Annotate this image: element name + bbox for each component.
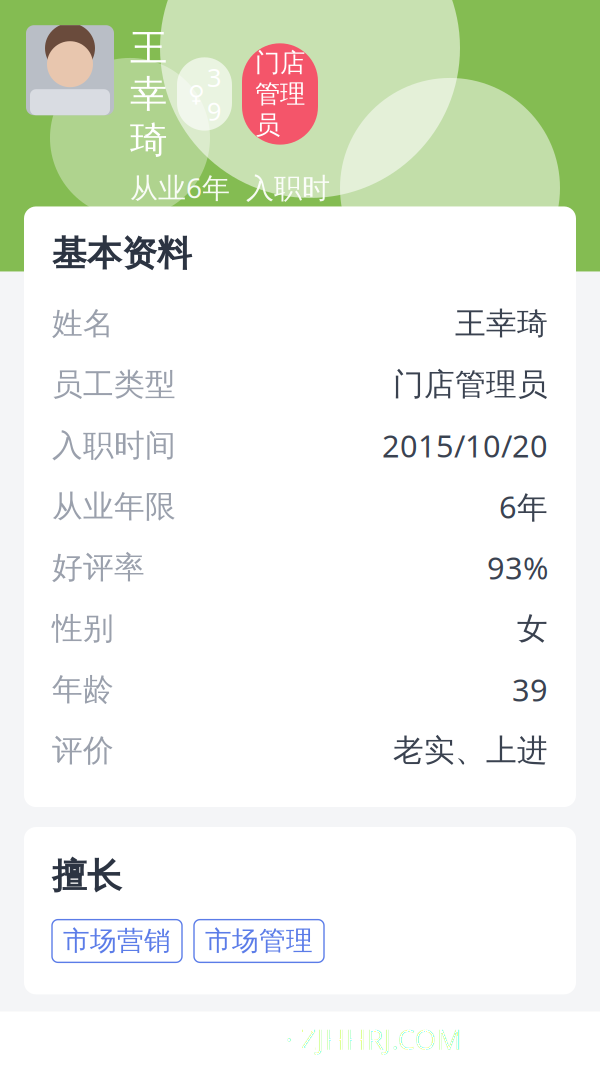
staticText: 女 <box>517 610 548 647</box>
staticText: 老实、上进 <box>393 732 548 769</box>
staticText: 从业年限 <box>52 488 176 525</box>
staticText: 姓名 <box>52 305 114 342</box>
staticText: 擅长 <box>52 855 122 898</box>
staticText: 市场管理 <box>205 925 313 957</box>
staticText: 从业6年 入职时间：2015/10/20 <box>130 169 334 243</box>
staticText: 6年 <box>499 486 548 527</box>
button[interactable]: 市场管理 <box>194 920 324 962</box>
staticText: 年龄 <box>52 671 114 708</box>
staticText: 王幸琦 <box>455 305 548 342</box>
staticText: 好评率 <box>52 549 145 586</box>
staticText: 39 <box>512 669 548 710</box>
staticText: ♀ <box>188 81 205 107</box>
staticText: 93% <box>487 547 548 588</box>
staticText: 入职时间 <box>52 427 176 464</box>
staticText: 基本资料 <box>52 232 192 275</box>
staticText: 员工类型 <box>52 366 176 403</box>
staticText: 性别 <box>52 610 114 647</box>
staticText: 门店管理员 <box>255 47 305 141</box>
button[interactable]: 市场营销 <box>52 920 182 962</box>
staticText: 39 <box>207 60 221 128</box>
staticText: 王幸琦 <box>130 25 167 163</box>
staticText: 指尖汇软件 · ZJHHRJ.COM <box>138 1020 461 1058</box>
staticText: ★ <box>130 268 156 302</box>
staticText: 评价 <box>52 732 114 769</box>
staticText: 门店管理员 <box>393 366 548 403</box>
staticText: 2015/10/20 <box>382 425 548 466</box>
staticText: 市场营销 <box>63 925 171 957</box>
staticText: 4.3 <box>164 265 206 304</box>
